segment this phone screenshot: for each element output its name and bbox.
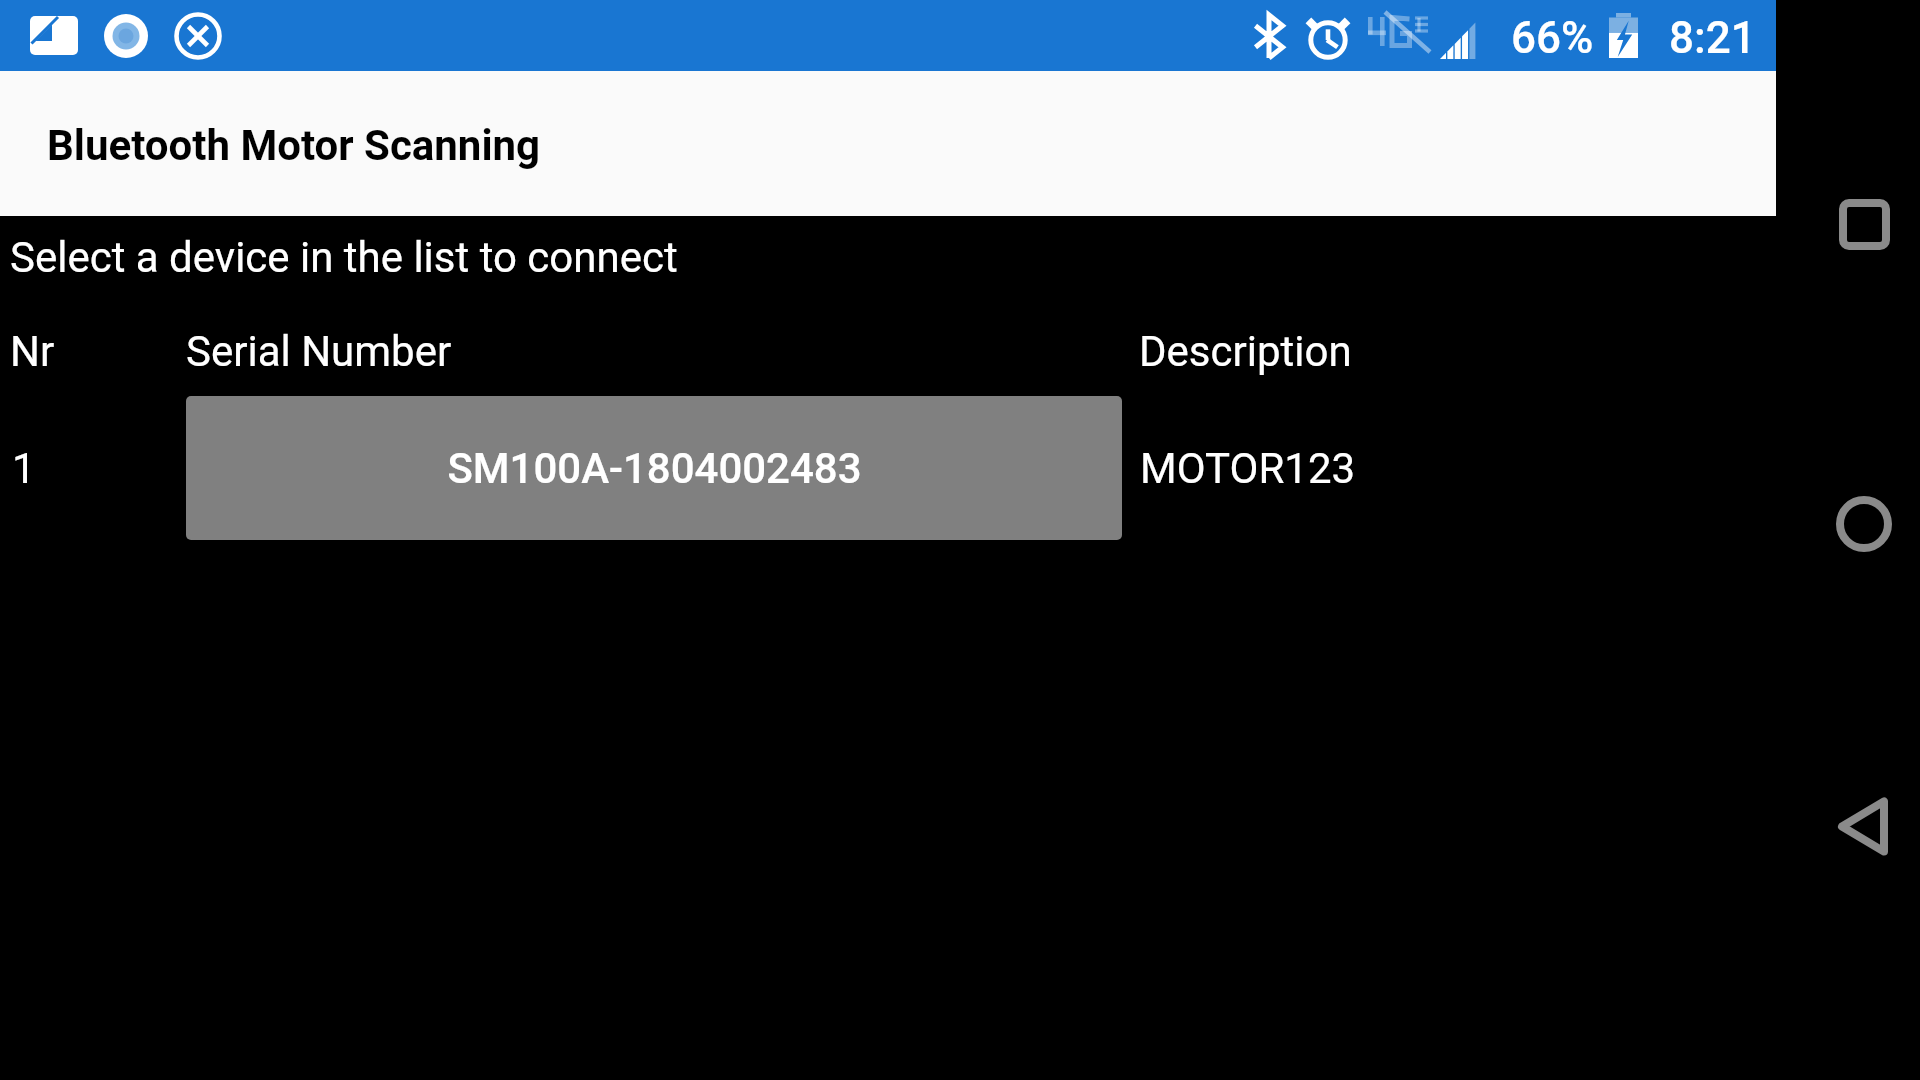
button[interactable]: Home [1819, 479, 1909, 569]
staticText: Bluetooth Motor Scanning [47, 121, 541, 170]
staticText: 1 [12, 444, 36, 493]
staticText: Serial Number [186, 327, 452, 376]
staticText: SM100A-1804002483 [447, 444, 862, 493]
staticText: Select a device in the list to connect [10, 233, 678, 282]
staticText: 8:21 [1669, 12, 1756, 64]
button[interactable]: Back [1818, 781, 1908, 871]
button[interactable]: Recent apps [1819, 179, 1909, 269]
staticText: Description [1139, 327, 1352, 376]
staticText: MOTOR123 [1140, 444, 1356, 493]
staticText: Nr [10, 327, 55, 376]
staticText: 66% [1511, 12, 1594, 64]
button[interactable]: 1 [0, 396, 1776, 540]
